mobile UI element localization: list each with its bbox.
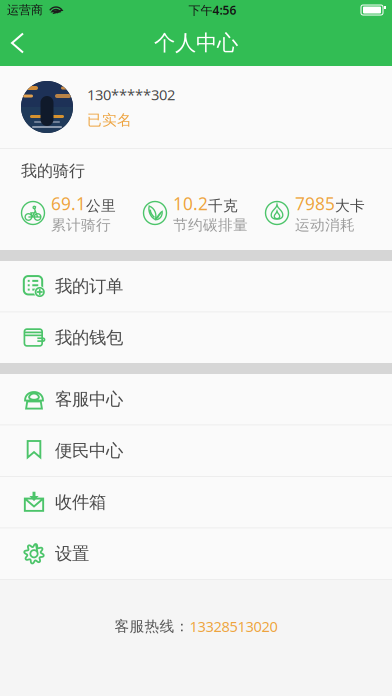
button[interactable]: 130*****302 <box>0 66 392 148</box>
staticText: 运动消耗 <box>295 216 355 234</box>
staticText: 公里 <box>86 197 116 215</box>
staticText: 便民中心 <box>55 440 123 461</box>
staticText: 节约碳排量 <box>173 216 248 234</box>
staticText: 已实名 <box>87 111 132 129</box>
staticText: 运营商 <box>7 3 43 17</box>
staticText: 13328513020 <box>189 616 277 636</box>
button[interactable]: 我的钱包 <box>0 312 392 363</box>
staticText: 我的骑行 <box>21 161 85 181</box>
button[interactable]: 客服热线： <box>114 616 277 636</box>
staticText: 千克 <box>208 197 238 215</box>
button[interactable]: 收件箱 <box>0 477 392 527</box>
staticText: 130*****302 <box>87 85 175 104</box>
staticText: 客服中心 <box>55 389 123 410</box>
staticText: 收件箱 <box>55 492 106 513</box>
button[interactable]: 我的订单 <box>0 261 392 311</box>
staticText: 下午4:56 <box>188 2 236 18</box>
button[interactable]: 便民中心 <box>0 425 392 476</box>
staticText: 累计骑行 <box>51 216 111 234</box>
staticText: 大卡 <box>335 197 365 215</box>
staticText: 设置 <box>55 543 89 564</box>
staticText: 10.2 <box>173 192 208 215</box>
staticText: 7985 <box>295 192 335 215</box>
button[interactable]: 客服中心 <box>0 374 392 424</box>
staticText: 客服热线： <box>114 617 189 635</box>
staticText: 69.1 <box>51 192 86 215</box>
button[interactable]: 设置 <box>0 528 392 579</box>
button[interactable]: 返回 <box>0 20 41 66</box>
staticText: 个人中心 <box>154 30 238 56</box>
staticText: 我的钱包 <box>55 327 123 348</box>
staticText: 我的订单 <box>55 276 123 297</box>
